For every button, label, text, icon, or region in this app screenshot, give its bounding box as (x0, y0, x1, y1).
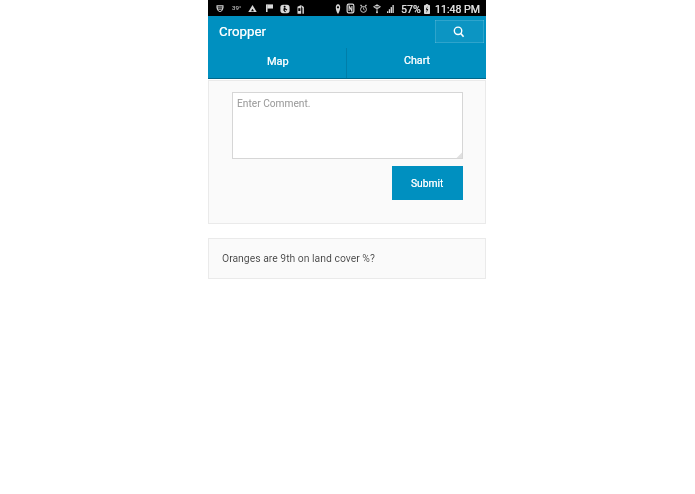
staticText: 11:48 PM (435, 3, 480, 15)
staticText: Submit (411, 177, 444, 189)
staticText: Cropper (219, 24, 267, 40)
staticText: Enter Comment. (237, 98, 311, 110)
staticText: Oranges are 9th on land cover %? (222, 252, 375, 264)
button[interactable]: Chart (386, 48, 485, 78)
staticText: Chart (404, 54, 431, 67)
button[interactable]: Submit (392, 166, 463, 200)
button[interactable]: Oranges are 9th on land cover %? (208, 238, 486, 279)
staticText: 57% (401, 3, 421, 15)
button[interactable]: Map (253, 48, 346, 78)
button[interactable]: Search (435, 20, 484, 43)
staticText: Map (267, 55, 289, 68)
staticText: 39° (232, 4, 242, 11)
button[interactable]: Enter Comment. (232, 92, 463, 159)
